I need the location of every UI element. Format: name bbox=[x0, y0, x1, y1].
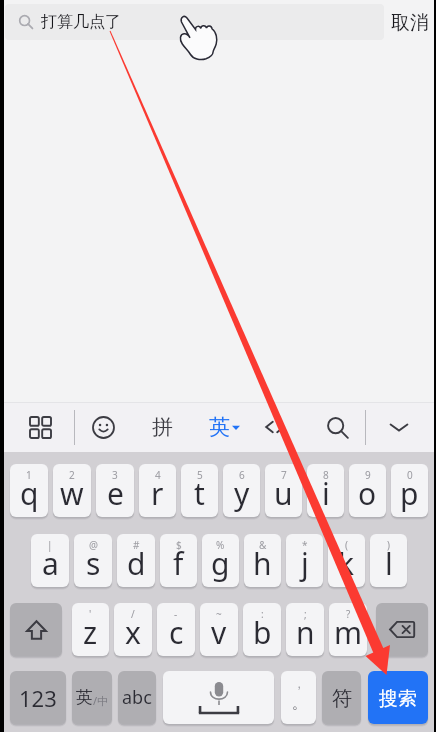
button[interactable]: ' bbox=[72, 603, 109, 656]
button[interactable]: ) bbox=[370, 534, 407, 587]
button[interactable]: & bbox=[244, 534, 281, 587]
button[interactable]: | bbox=[31, 534, 69, 587]
staticText: m bbox=[334, 612, 363, 653]
button[interactable]: ; bbox=[286, 603, 324, 656]
staticText: q bbox=[20, 473, 39, 514]
staticText: e bbox=[107, 473, 124, 514]
button[interactable]: Comma and period bbox=[281, 671, 316, 724]
staticText: 符 bbox=[332, 686, 352, 711]
staticText: l bbox=[385, 543, 393, 584]
button[interactable]: 123 bbox=[10, 671, 66, 724]
button[interactable]: / bbox=[114, 603, 152, 656]
staticText: 1 bbox=[26, 468, 32, 482]
staticText: | bbox=[47, 538, 53, 552]
staticText: b bbox=[253, 612, 272, 653]
staticText: 9 bbox=[365, 468, 371, 482]
staticText: 7 bbox=[281, 468, 287, 482]
staticText: ~ bbox=[216, 607, 222, 621]
staticText: ( bbox=[345, 538, 348, 552]
staticText: 123 bbox=[19, 683, 57, 713]
staticText: ? bbox=[346, 607, 351, 621]
staticText: v bbox=[211, 612, 227, 653]
button[interactable]: 英 bbox=[72, 671, 112, 724]
staticText: 4 bbox=[155, 468, 161, 482]
staticText: & bbox=[259, 538, 267, 552]
staticText: u bbox=[274, 473, 293, 514]
button[interactable]: : bbox=[243, 603, 281, 656]
staticText: 2 bbox=[69, 468, 75, 482]
button[interactable]: 9 bbox=[349, 464, 386, 517]
staticText: ' bbox=[89, 607, 92, 621]
button[interactable]: 3 bbox=[96, 464, 134, 517]
button[interactable]: ( bbox=[328, 534, 365, 587]
staticText: i bbox=[322, 473, 330, 514]
button[interactable]: 英 bbox=[201, 406, 247, 448]
staticText: 5 bbox=[197, 468, 203, 482]
button[interactable]: 0 bbox=[391, 464, 428, 517]
staticText: o bbox=[358, 473, 377, 514]
staticText: 英 bbox=[209, 414, 230, 440]
staticText: - bbox=[174, 607, 178, 621]
staticText: h bbox=[253, 543, 272, 584]
button[interactable]: 6 bbox=[223, 464, 260, 517]
button[interactable]: % bbox=[202, 534, 239, 587]
button[interactable]: Shift bbox=[10, 603, 62, 656]
staticText: /中 bbox=[93, 693, 109, 708]
button[interactable]: @ bbox=[74, 534, 112, 587]
button[interactable]: 搜索 bbox=[368, 671, 428, 724]
staticText: 取消 bbox=[391, 11, 429, 35]
staticText: w bbox=[60, 473, 84, 514]
staticText: s bbox=[86, 543, 101, 584]
staticText: # bbox=[133, 538, 140, 552]
staticText: p bbox=[400, 473, 419, 514]
staticText: d bbox=[127, 543, 146, 584]
button[interactable]: 8 bbox=[307, 464, 344, 517]
button[interactable]: Input methods bbox=[19, 406, 61, 448]
button[interactable]: 拼 bbox=[141, 406, 183, 448]
staticText: k bbox=[338, 543, 355, 584]
staticText: y bbox=[234, 473, 250, 514]
staticText: * bbox=[302, 538, 308, 552]
staticText: 搜索 bbox=[379, 687, 417, 711]
staticText: 8 bbox=[323, 468, 329, 482]
staticText: n bbox=[296, 612, 315, 653]
button[interactable]: 符 bbox=[322, 671, 361, 724]
button[interactable]: 4 bbox=[139, 464, 176, 517]
staticText: ; bbox=[304, 607, 307, 621]
staticText: 0 bbox=[407, 468, 413, 482]
button[interactable]: abc bbox=[118, 671, 156, 724]
staticText: ， bbox=[293, 676, 305, 691]
button[interactable]: Space bbox=[163, 671, 274, 724]
button[interactable]: Search bbox=[316, 406, 358, 448]
staticText: 打算几点了 bbox=[41, 12, 121, 32]
button[interactable]: # bbox=[117, 534, 155, 587]
staticText: g bbox=[211, 543, 230, 584]
button[interactable]: Code input bbox=[254, 406, 296, 448]
staticText: : bbox=[261, 607, 264, 621]
staticText: x bbox=[125, 612, 141, 653]
button[interactable]: 取消 bbox=[383, 2, 436, 44]
button[interactable]: 2 bbox=[53, 464, 91, 517]
button[interactable]: 1 bbox=[10, 464, 48, 517]
button[interactable]: 5 bbox=[181, 464, 218, 517]
staticText: f bbox=[173, 543, 184, 584]
staticText: 。 bbox=[292, 695, 306, 713]
button[interactable]: $ bbox=[160, 534, 197, 587]
button[interactable]: ~ bbox=[200, 603, 238, 656]
staticText: abc bbox=[122, 685, 152, 710]
button[interactable]: Hide keyboard bbox=[378, 406, 420, 448]
staticText: / bbox=[131, 607, 135, 621]
button[interactable]: 7 bbox=[265, 464, 302, 517]
button[interactable]: - bbox=[157, 603, 195, 656]
button[interactable]: * bbox=[286, 534, 323, 587]
staticText: t bbox=[194, 473, 205, 514]
button[interactable]: 打算几点了 bbox=[5, 4, 384, 40]
staticText: % bbox=[216, 538, 225, 552]
button[interactable]: Emoji bbox=[82, 406, 124, 448]
staticText: c bbox=[169, 612, 184, 653]
button[interactable]: Backspace bbox=[376, 603, 428, 656]
staticText: r bbox=[151, 473, 164, 514]
staticText: a bbox=[42, 543, 59, 584]
button[interactable]: ? bbox=[329, 603, 367, 656]
staticText: z bbox=[83, 612, 98, 653]
